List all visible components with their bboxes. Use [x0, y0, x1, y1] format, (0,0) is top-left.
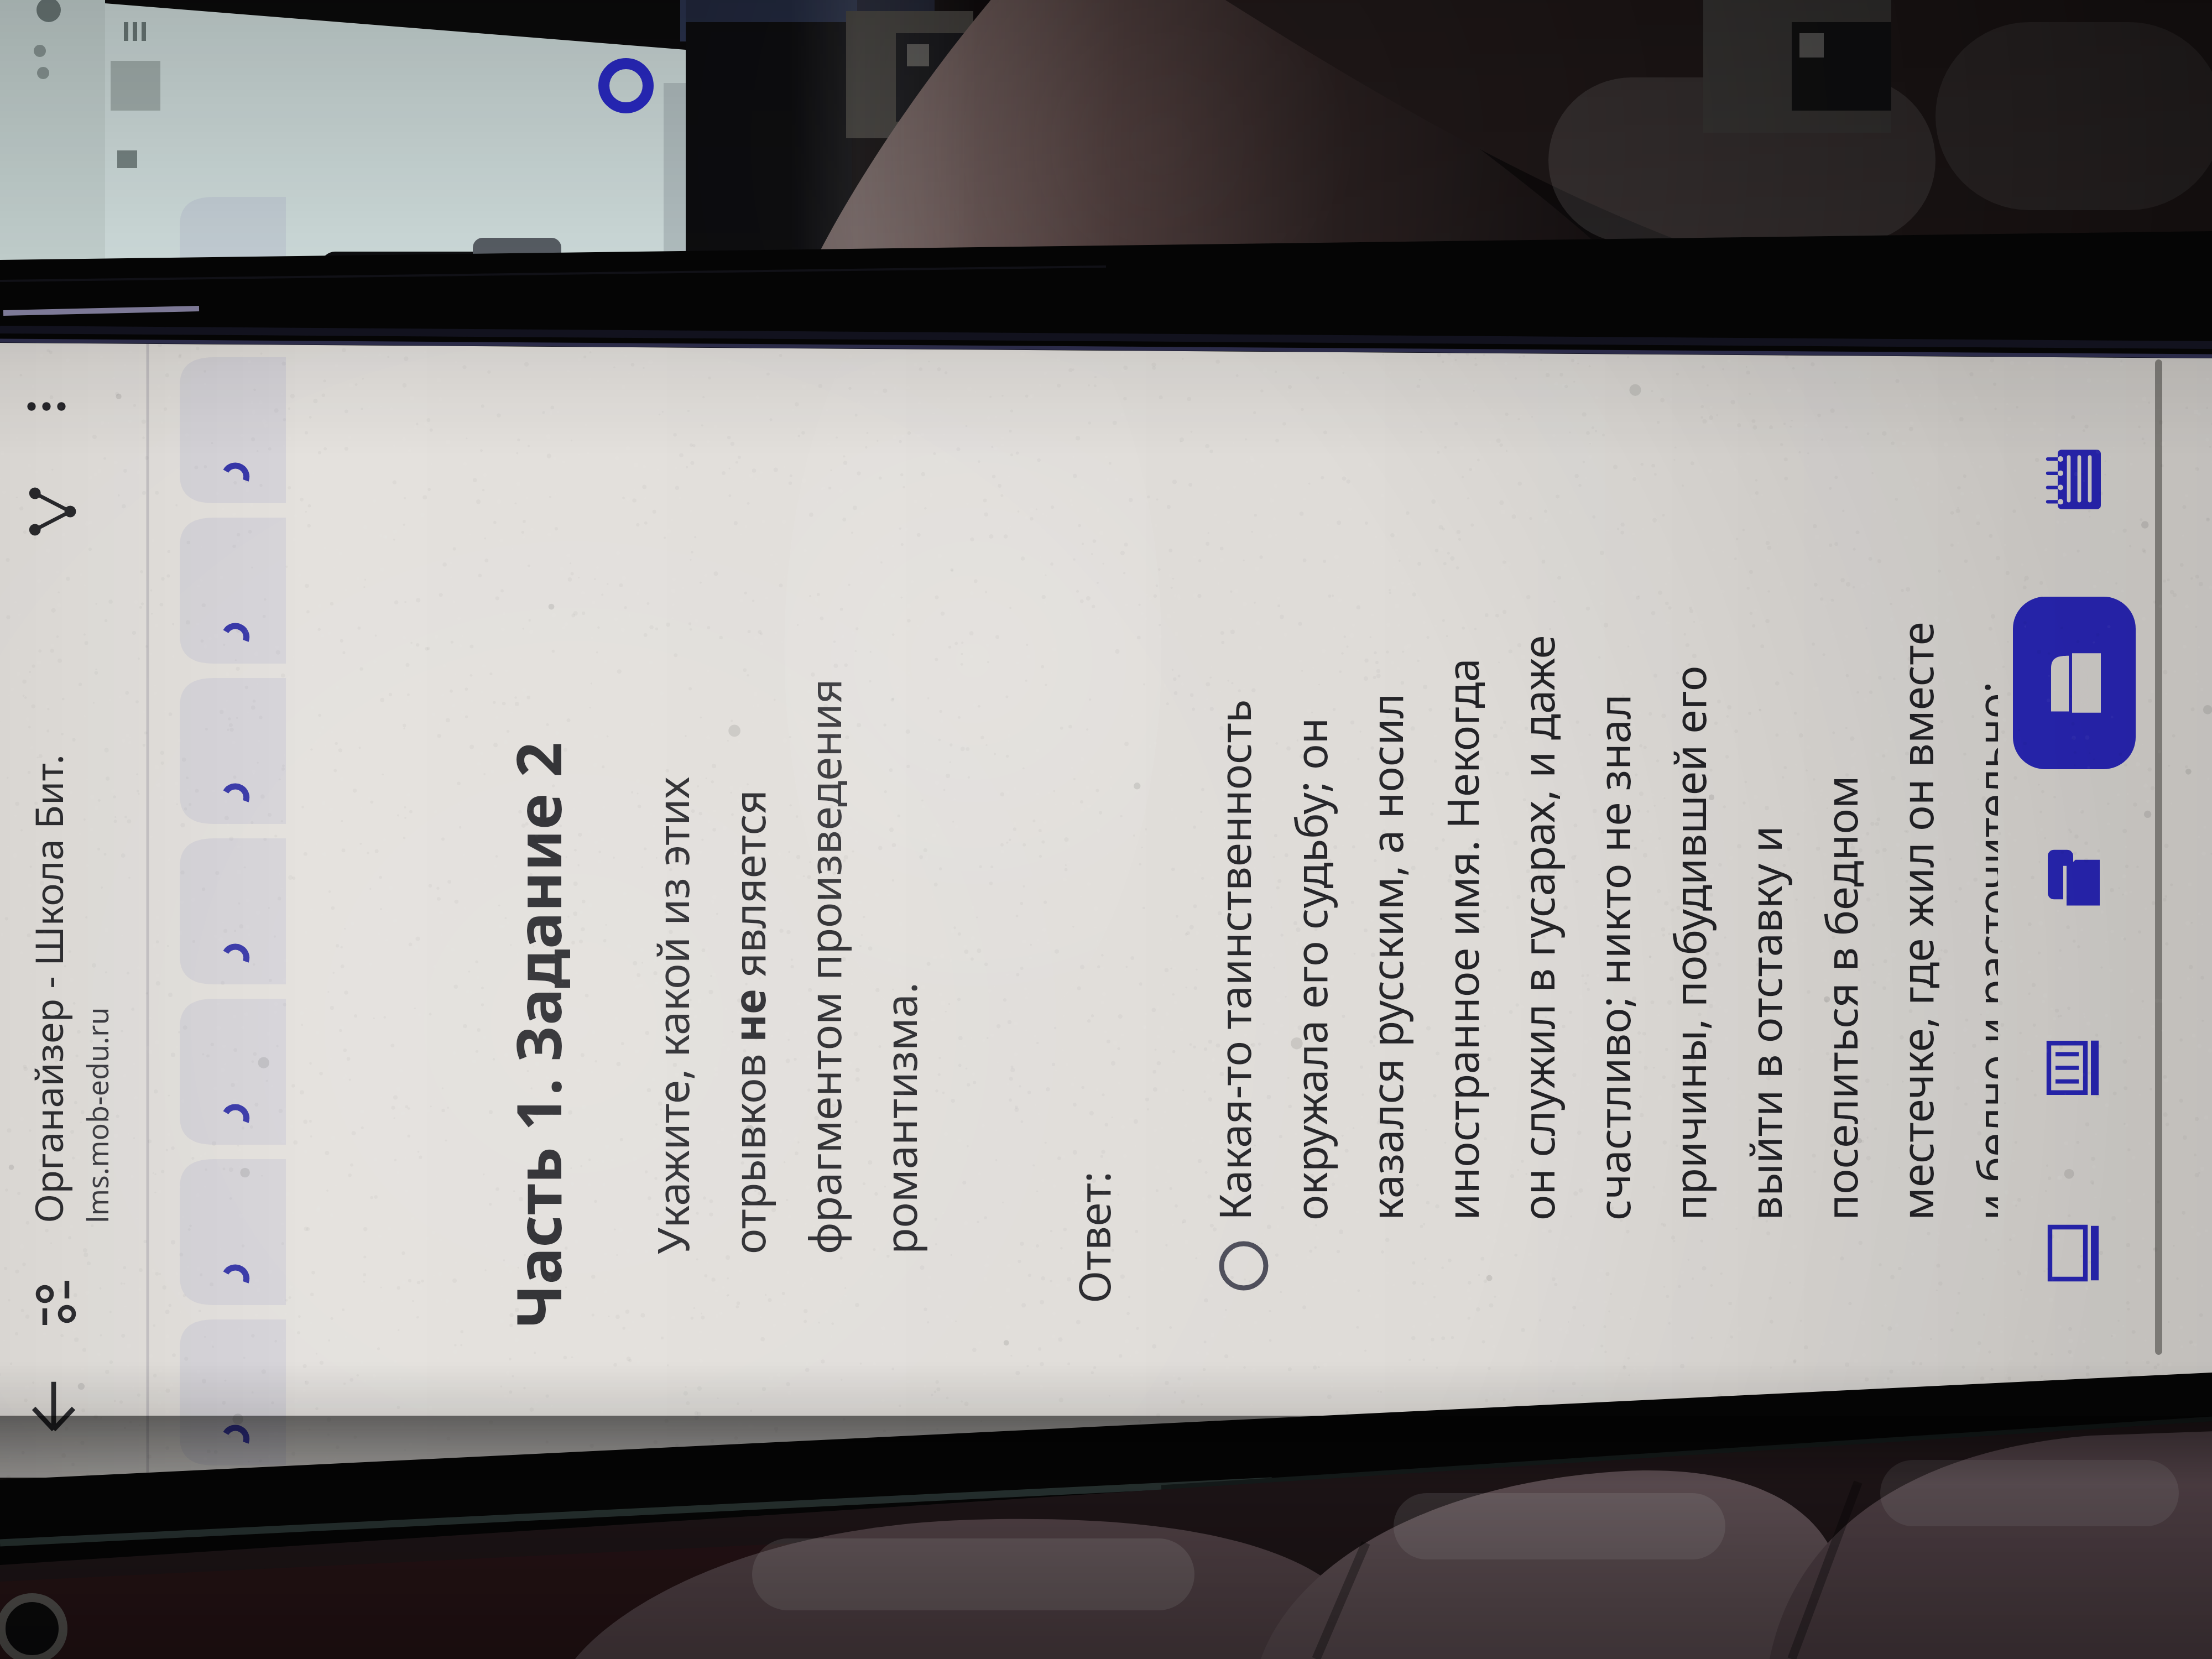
button[interactable]: Library	[2013, 1167, 2136, 1339]
button[interactable]: Share	[11, 470, 93, 553]
staticText: Какая-то таинственность окружала его суд…	[1205, 597, 1998, 1220]
button[interactable]: Tasks	[2013, 791, 2136, 963]
staticText: lms.mob-edu.ru	[77, 1007, 117, 1223]
button[interactable]: More options	[11, 371, 82, 442]
button[interactable]: Какая-то таинственность окружала его суд…	[1205, 597, 1998, 1291]
button[interactable]: Notes	[2013, 393, 2136, 566]
staticText: Ответ:	[1065, 1171, 1123, 1303]
staticText: Укажите, какой из этих отрывков не являе…	[643, 588, 929, 1254]
button[interactable]: Back	[9, 1361, 98, 1450]
button[interactable]: Lessons	[2013, 597, 2136, 769]
staticText: Часть 1. Задание 2	[495, 742, 580, 1329]
button[interactable]: Textbook	[2013, 982, 2136, 1154]
button[interactable]: Open tabs	[148, 343, 286, 1478]
staticText: Органайзер - Школа Бит.	[22, 754, 74, 1223]
button[interactable]: Органайзер - Школа Бит.	[22, 754, 117, 1223]
button[interactable]: Page settings	[16, 1264, 93, 1342]
